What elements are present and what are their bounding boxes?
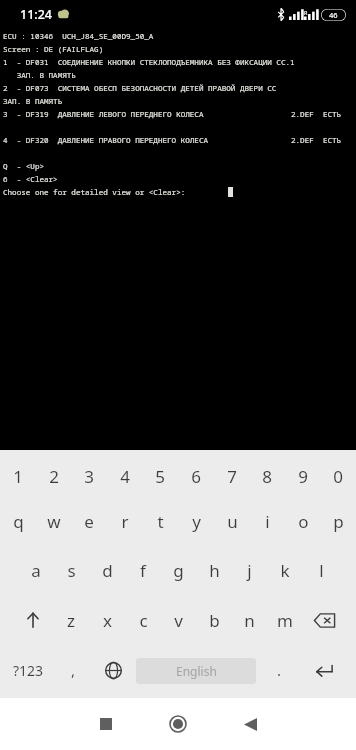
staticText: . [277,660,282,680]
staticText: 3 - DF319 ДАВЛЕНИЕ ЛЕВОГО ПЕРЕДНЕГО КОЛЕ… [3,109,204,119]
staticText: ?123 [13,661,44,680]
button[interactable]: v [160,599,196,641]
button[interactable]: ?123 [2,650,54,690]
button[interactable]: c [125,599,161,641]
button[interactable]: Backspace [303,599,345,641]
button[interactable]: d [89,549,125,591]
staticText: h [209,559,220,582]
button[interactable]: 1 [0,455,36,497]
button[interactable]: r [107,500,143,542]
button[interactable]: 9 [285,455,321,497]
staticText: v [174,609,183,632]
button[interactable]: l [303,549,339,591]
staticText: 8 [262,465,272,488]
staticText: 7 [227,465,237,488]
staticText: 4 - DF320 ДАВЛЕНИЕ ПРАВОГО ПЕРЕДНЕГО КОЛ… [3,135,209,145]
staticText: 11:24 [20,6,53,23]
button[interactable]: . [262,650,296,690]
staticText: 6 - <Clear> [3,174,58,184]
button[interactable]: Home [157,703,199,745]
staticText: e [84,510,94,533]
button[interactable]: f [125,549,161,591]
button[interactable]: 0 [320,455,356,497]
staticText: Choose one for detailed view or <Clear>: [3,187,186,197]
button[interactable]: t [142,500,178,542]
staticText: n [244,609,255,632]
staticText: English [176,663,217,679]
button[interactable]: z [53,599,89,641]
button[interactable]: o [285,500,321,542]
button[interactable]: i [249,500,285,542]
button[interactable]: Change language [94,650,132,690]
staticText: 2.DEF ЕСТЬ [291,135,342,145]
staticText: 4 [120,465,130,488]
button[interactable]: q [0,500,36,542]
staticText: f [140,559,146,582]
button[interactable]: g [160,549,196,591]
staticText: z [67,609,75,632]
staticText: t [157,510,164,533]
staticText: ЗАП. В ПАМЯТЬ [3,96,63,106]
button[interactable]: j [231,549,267,591]
staticText: p [333,510,344,533]
button[interactable]: m [267,599,303,641]
staticText: 3 [84,465,94,488]
staticText: k [280,559,290,582]
staticText: g [173,559,184,582]
button[interactable]: n [231,599,267,641]
staticText: l [319,559,324,582]
button[interactable]: Shift [12,599,54,641]
staticText: 1 - DF031 СОЕДИНЕНИЕ КНОПКИ СТЕКЛОПОДЪЕМ… [3,57,295,67]
button[interactable]: b [196,599,232,641]
staticText: 1 [13,465,23,488]
button[interactable]: a [18,549,54,591]
button[interactable]: Recents [86,704,126,744]
staticText: c [139,609,148,632]
staticText: d [102,559,113,582]
staticText: b [209,609,220,632]
staticText: 2.DEF ЕСТЬ [291,109,342,119]
button[interactable]: Enter [302,650,346,690]
button[interactable]: u [214,500,250,542]
button[interactable]: , [56,650,90,690]
staticText: 2 [49,465,59,488]
staticText: m [277,609,293,632]
staticText: Screen : DE (FAILFLAG) [3,44,104,54]
staticText: , [71,660,76,680]
staticText: R [304,9,308,16]
staticText: 5 [155,465,165,488]
staticText: a [31,559,41,582]
button[interactable]: 6 [178,455,214,497]
button[interactable]: 2 [36,455,72,497]
button[interactable]: w [36,500,72,542]
staticText: i [265,510,270,533]
staticText: 0 [333,465,343,488]
button[interactable]: English [136,658,256,684]
button[interactable]: 3 [71,455,107,497]
button[interactable]: p [320,500,356,542]
button[interactable]: k [267,549,303,591]
staticText: y [192,510,201,533]
staticText: j [247,559,252,582]
button[interactable]: s [53,549,89,591]
button[interactable]: 8 [249,455,285,497]
staticText: s [67,559,76,582]
button[interactable]: 7 [214,455,250,497]
button[interactable]: e [71,500,107,542]
button[interactable]: x [89,599,125,641]
staticText: w [47,510,61,533]
button[interactable]: 5 [142,455,178,497]
button[interactable]: Back [230,704,270,744]
staticText: o [298,510,309,533]
staticText: ЗАП. В ПАМЯТЬ [3,70,76,80]
staticText: r [121,510,129,533]
staticText: 6 [191,465,201,488]
staticText: 2 - DF073 СИСТЕМА ОБЕСП БЕЗОПАСНОСТИ ДЕТ… [3,83,277,93]
staticText: Q - <Up> [3,161,45,171]
button[interactable]: h [196,549,232,591]
staticText: x [103,609,112,632]
staticText: 9 [298,465,308,488]
button[interactable]: 4 [107,455,143,497]
button[interactable]: y [178,500,214,542]
staticText: 46 [329,10,338,20]
